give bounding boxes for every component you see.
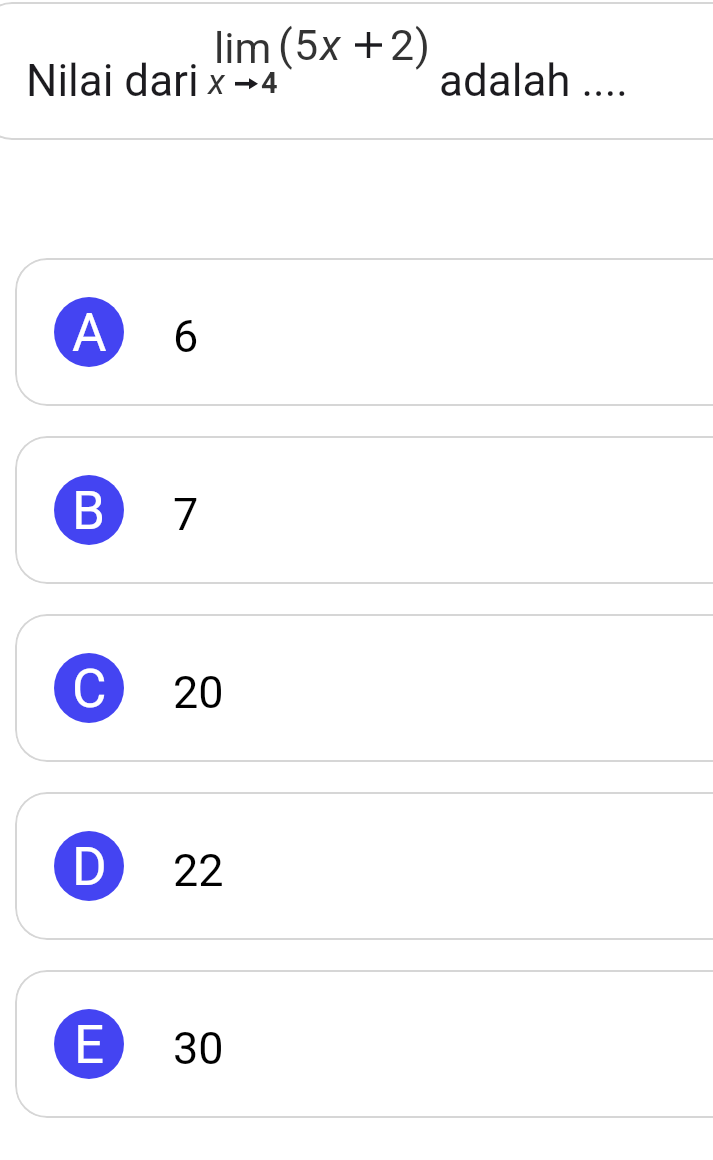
staticText: 4: [261, 66, 278, 100]
staticText: 5: [294, 20, 319, 70]
staticText: ): [415, 20, 430, 70]
staticText: C: [72, 658, 107, 720]
button[interactable]: D: [0, 792, 713, 940]
staticText: 7: [173, 488, 199, 541]
button[interactable]: C: [0, 614, 713, 762]
staticText: x: [320, 20, 341, 70]
staticText: 2: [390, 20, 415, 70]
staticText: 20: [173, 666, 224, 719]
button[interactable]: A: [0, 258, 713, 406]
staticText: (: [278, 20, 293, 70]
staticText: E: [74, 1014, 105, 1076]
staticText: A: [72, 302, 107, 364]
staticText: x: [208, 62, 225, 103]
staticText: B: [72, 480, 106, 542]
staticText: D: [72, 836, 107, 898]
button[interactable]: B: [0, 436, 713, 584]
button[interactable]: E: [0, 970, 713, 1118]
staticText: 22: [173, 844, 224, 897]
staticText: Nilai dari: [26, 55, 199, 107]
staticText: 30: [173, 1022, 224, 1075]
staticText: lim: [214, 24, 272, 73]
staticText: 6: [173, 310, 199, 363]
staticText: adalah ....: [439, 55, 628, 107]
